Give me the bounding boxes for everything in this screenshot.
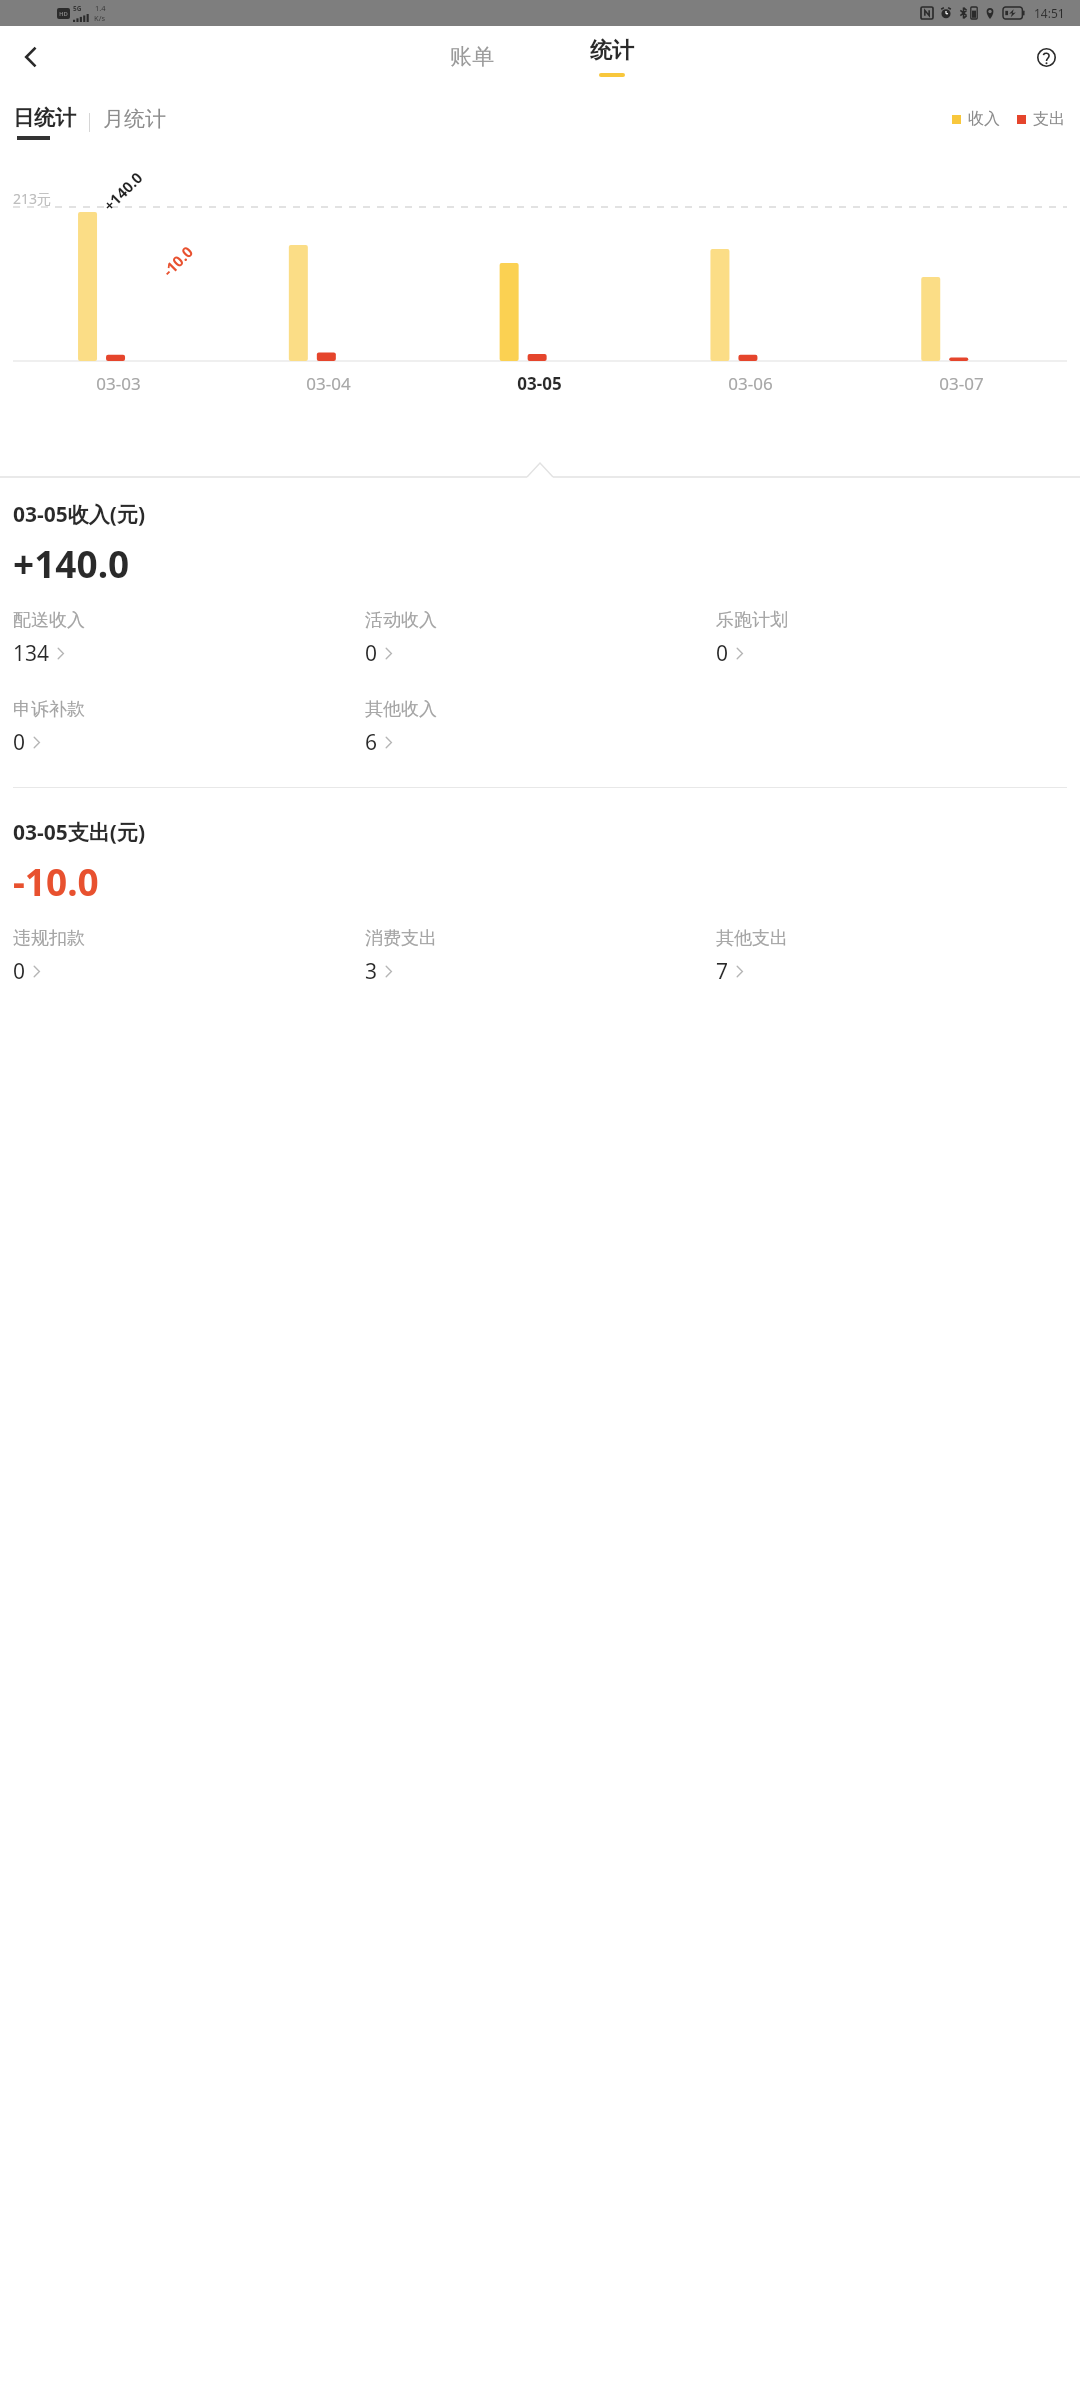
button[interactable]: 03-05 [434, 372, 645, 395]
staticText: 7 [716, 957, 729, 986]
button[interactable]: 03-07 [856, 372, 1067, 395]
staticText: 配送收入 [13, 609, 85, 632]
staticText: 6 [365, 728, 378, 757]
staticText: 违规扣款 [13, 927, 85, 950]
staticText: 03-05收入(元) [13, 500, 146, 529]
staticText: 账单 [450, 43, 494, 71]
button[interactable]: 账单 [428, 37, 516, 77]
button[interactable]: Help [1022, 33, 1070, 81]
staticText: 其他收入 [365, 698, 437, 721]
staticText: 03-06 [728, 372, 773, 395]
staticText: +140.0 [99, 167, 147, 215]
button[interactable]: 申诉补款 [13, 698, 93, 761]
staticText: 213元 [13, 189, 52, 208]
staticText: 申诉补款 [13, 698, 85, 721]
staticText: K/s [94, 13, 106, 23]
button[interactable]: 03-06 [645, 372, 856, 395]
staticText: 乐跑计划 [716, 609, 788, 632]
staticText: 消费支出 [365, 927, 437, 950]
staticText: 其他支出 [716, 927, 788, 950]
staticText: -10.0 [158, 242, 197, 280]
staticText: -10.0 [13, 856, 99, 906]
button[interactable]: 其他收入 [365, 698, 445, 761]
staticText: 0 [716, 639, 729, 668]
staticText: 0 [13, 728, 26, 757]
staticText: 0 [13, 957, 26, 986]
button[interactable]: 03-04 [223, 372, 434, 395]
button[interactable]: 乐跑计划 [716, 609, 796, 672]
button[interactable]: 月统计 [100, 110, 169, 136]
staticText: 1.4 [95, 3, 106, 13]
button[interactable]: 消费支出 [365, 927, 445, 990]
staticText: 3 [365, 957, 378, 986]
staticText: 134 [13, 639, 50, 668]
staticText: 活动收入 [365, 609, 437, 632]
staticText: 03-05 [517, 372, 562, 395]
staticText: 03-05支出(元) [13, 818, 146, 847]
button[interactable]: Back [6, 32, 56, 82]
staticText: 支出 [1033, 109, 1065, 129]
staticText: +140.0 [13, 538, 130, 588]
staticText: 月统计 [103, 106, 166, 132]
staticText: 统计 [590, 37, 634, 65]
staticText: 03-07 [939, 372, 984, 395]
staticText: 5G [73, 4, 82, 13]
staticText: 14:51 [1034, 5, 1065, 21]
button[interactable]: 日统计 [10, 105, 79, 140]
button[interactable]: 违规扣款 [13, 927, 93, 990]
button[interactable]: 03-03 [13, 372, 223, 395]
staticText: 03-04 [306, 372, 351, 395]
button[interactable]: 配送收入 [13, 609, 93, 672]
staticText: 日统计 [13, 105, 76, 131]
staticText: HD [59, 10, 68, 18]
button[interactable]: 统计 [572, 35, 652, 79]
staticText: 0 [365, 639, 378, 668]
button[interactable]: 活动收入 [365, 609, 445, 672]
button[interactable]: 其他支出 [716, 927, 796, 990]
staticText: 03-03 [96, 372, 141, 395]
staticText: 收入 [968, 109, 1000, 129]
